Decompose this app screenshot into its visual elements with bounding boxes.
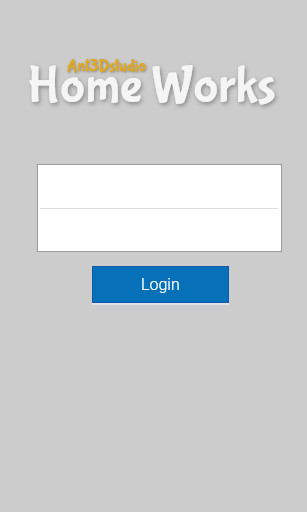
- staticText: Login: [141, 275, 180, 294]
- staticText: Ant3Dstudio: [0, 57, 260, 77]
- button[interactable]: Login: [92, 266, 229, 303]
- button[interactable]: Password field: [37, 209, 282, 250]
- button[interactable]: User name field: [37, 164, 282, 208]
- staticText: Home Works: [0, 57, 305, 117]
